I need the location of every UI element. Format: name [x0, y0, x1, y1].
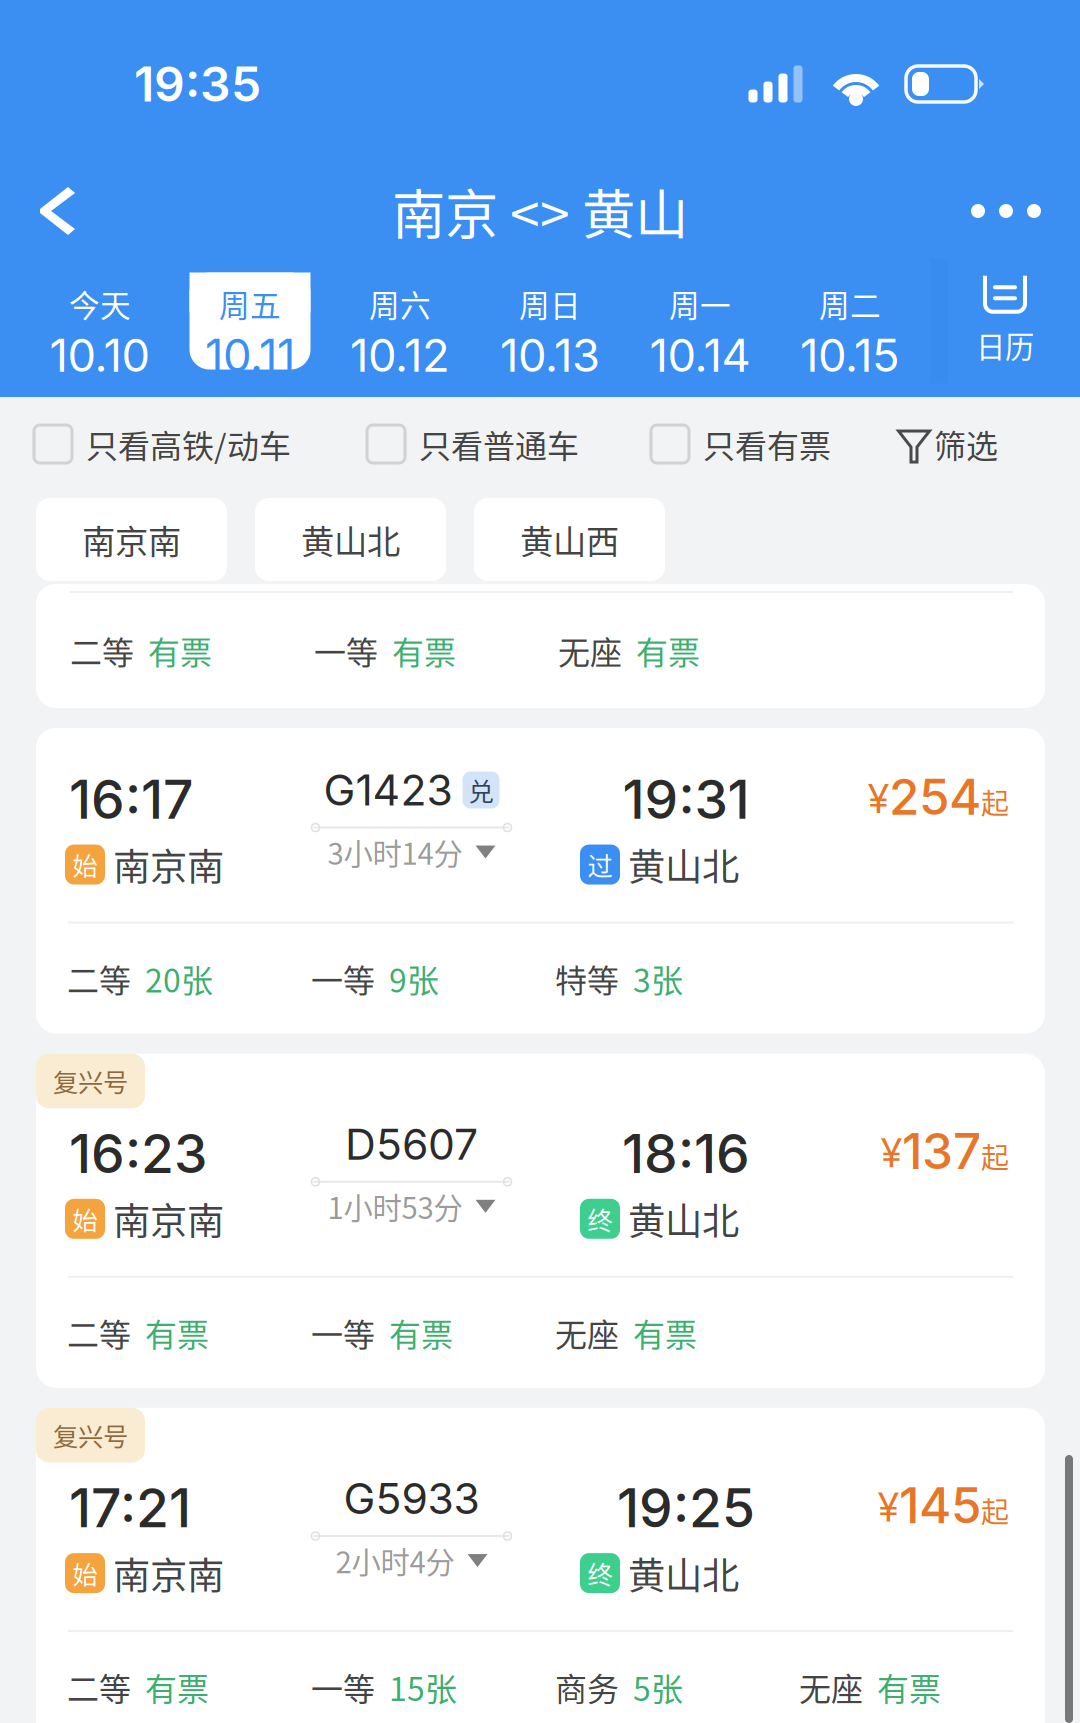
staticText: 3小时14分	[327, 831, 462, 873]
button[interactable]: 黄山北	[255, 498, 446, 581]
staticText: 10.11	[205, 328, 295, 383]
staticText: 今天	[69, 281, 131, 326]
button[interactable]: 黄山西	[474, 498, 665, 581]
button[interactable]: 16:17	[36, 728, 1045, 1034]
staticText: 起	[981, 781, 1009, 822]
staticText: 137	[902, 1121, 981, 1181]
button[interactable]: 复兴号	[36, 1054, 1045, 1388]
staticText: 终	[587, 1555, 612, 1591]
staticText: 254	[889, 767, 981, 827]
staticText: 起	[981, 1135, 1009, 1176]
staticText: 二等	[67, 1664, 131, 1710]
staticText: 19:25	[617, 1475, 755, 1540]
staticText: 南京南	[113, 1192, 224, 1246]
staticText: 一等	[311, 1664, 375, 1710]
staticText: 一等	[311, 955, 375, 1002]
staticText: ¥	[881, 1129, 902, 1177]
button[interactable]: 日历	[930, 272, 1080, 370]
staticText: 145	[899, 1475, 981, 1535]
button[interactable]: 南京南	[36, 498, 227, 581]
button[interactable]: 今天	[25, 272, 175, 369]
staticText: 周一	[669, 281, 731, 326]
staticText: 商务	[555, 1664, 619, 1710]
button[interactable]: 只看高铁/动车	[34, 401, 291, 487]
staticText: 10.14	[649, 328, 750, 383]
button[interactable]: 只看有票	[651, 401, 831, 487]
staticText: 起	[981, 1490, 1009, 1530]
staticText: 2小时4分	[335, 1539, 454, 1582]
staticText: 20张	[145, 955, 213, 1002]
staticText: D5607	[345, 1118, 478, 1170]
staticText: 10.10	[49, 328, 150, 383]
button[interactable]: 复兴号	[36, 1408, 1045, 1723]
button[interactable]: 周日	[475, 272, 625, 369]
staticText: 黄山北	[301, 515, 400, 564]
staticText: 16:23	[69, 1121, 207, 1186]
staticText: 只看高铁/动车	[86, 421, 291, 467]
staticText: 周日	[519, 281, 581, 326]
staticText: 一等	[314, 627, 378, 674]
staticText: 9张	[389, 955, 439, 1002]
staticText: 黄山北	[628, 1192, 739, 1246]
staticText: 复兴号	[53, 1417, 128, 1454]
staticText: 无座	[555, 1310, 619, 1356]
staticText: 南京南	[113, 1546, 224, 1600]
staticText: 有票	[633, 1310, 697, 1356]
staticText: 有票	[148, 627, 212, 674]
staticText: 黄山北	[628, 1546, 739, 1600]
staticText: 特等	[555, 955, 619, 1002]
staticText: 兑	[468, 772, 493, 808]
button[interactable]: 周六	[325, 272, 475, 369]
staticText: 19:31	[622, 767, 749, 831]
staticText: 15张	[389, 1664, 457, 1710]
staticText: 只看有票	[703, 421, 831, 467]
staticText: 有票	[392, 627, 456, 674]
staticText: ¥	[878, 1483, 899, 1531]
staticText: 复兴号	[53, 1063, 128, 1099]
staticText: 二等	[67, 955, 131, 1002]
staticText: 无座	[799, 1664, 863, 1710]
staticText: 日历	[976, 324, 1034, 366]
staticText: 周五	[219, 281, 281, 326]
staticText: 始	[72, 1200, 97, 1237]
staticText: 二等	[67, 1310, 131, 1356]
staticText: 17:21	[69, 1475, 191, 1540]
staticText: 无座	[558, 627, 622, 674]
staticText: G1423	[323, 764, 452, 816]
staticText: G5933	[343, 1473, 479, 1524]
button[interactable]: 周二	[775, 272, 925, 369]
staticText: 周六	[369, 281, 431, 326]
staticText: 有票	[145, 1664, 209, 1710]
button[interactable]: 周五	[175, 272, 325, 369]
staticText: 19:35	[134, 55, 261, 113]
staticText: 南京 <> 黄山	[392, 172, 688, 250]
staticText: 过	[587, 846, 612, 883]
staticText: 1小时53分	[327, 1185, 462, 1227]
staticText: 始	[72, 846, 97, 883]
button[interactable]: 周一	[625, 272, 775, 369]
button[interactable]: 更多	[934, 174, 1080, 248]
staticText: 南京南	[113, 837, 224, 892]
staticText: 10.12	[350, 328, 450, 383]
staticText: 16:17	[69, 767, 193, 831]
staticText: 3张	[633, 955, 683, 1002]
staticText: 一等	[311, 1310, 375, 1356]
staticText: 只看普通车	[419, 421, 579, 467]
staticText: 终	[587, 1200, 612, 1237]
staticText: 有票	[389, 1310, 453, 1356]
staticText: 黄山西	[520, 515, 619, 564]
button[interactable]: 二等	[36, 584, 1045, 708]
staticText: 黄山北	[628, 837, 739, 892]
button[interactable]: 筛选	[897, 401, 998, 487]
staticText: 有票	[636, 627, 700, 674]
staticText: 始	[72, 1555, 97, 1591]
staticText: 有票	[145, 1310, 209, 1356]
staticText: 南京南	[82, 515, 181, 564]
staticText: 筛选	[934, 421, 998, 467]
staticText: 10.13	[500, 328, 600, 383]
button[interactable]: 返回	[0, 175, 119, 247]
button[interactable]: 只看普通车	[367, 401, 579, 487]
staticText: 10.15	[800, 328, 900, 383]
staticText: 二等	[70, 627, 134, 674]
staticText: ¥	[868, 774, 889, 823]
